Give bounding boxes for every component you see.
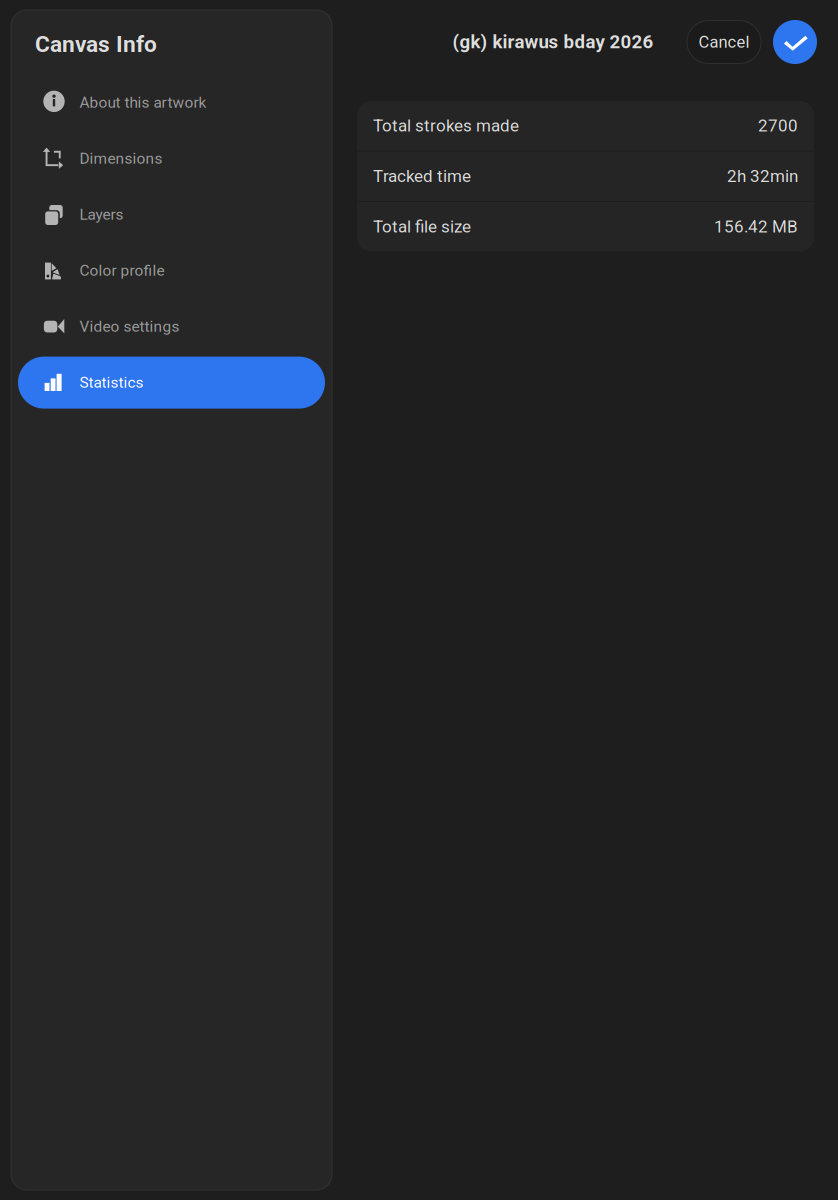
button[interactable]: Color profile [18, 243, 325, 299]
button[interactable]: Layers [18, 187, 325, 243]
staticText: Cancel [698, 32, 749, 52]
button[interactable]: Done [773, 20, 817, 64]
staticText: Color profile [79, 262, 164, 280]
staticText: Statistics [79, 374, 143, 392]
staticText: 2700 [758, 116, 798, 136]
staticText: Total strokes made [373, 116, 519, 136]
button[interactable]: Cancel [687, 20, 761, 63]
staticText: Canvas Info [35, 31, 157, 58]
staticText: About this artwork [79, 94, 206, 112]
button[interactable]: Dimensions [18, 131, 325, 187]
button[interactable]: Statistics [18, 355, 325, 411]
staticText: Dimensions [79, 150, 162, 168]
staticText: Tracked time [373, 166, 471, 186]
staticText: 156.42 MB [714, 217, 798, 237]
staticText: Total file size [373, 217, 471, 237]
staticText: 2h 32min [727, 166, 798, 186]
staticText: Video settings [79, 318, 179, 336]
staticText: (gk) kirawus bday 2026 [452, 31, 653, 53]
button[interactable]: About this artwork [18, 75, 325, 131]
button[interactable]: Video settings [18, 299, 325, 355]
staticText: Layers [79, 206, 123, 224]
